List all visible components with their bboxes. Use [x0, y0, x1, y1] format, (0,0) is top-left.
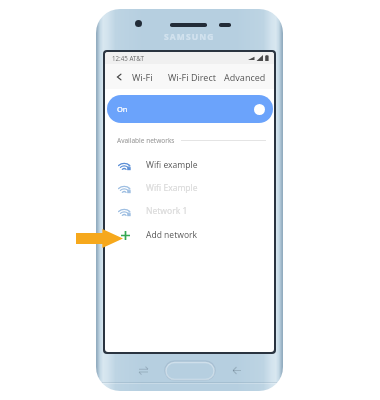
- button[interactable]: Add network: [105, 222, 274, 247]
- other: Pointer to Add network: [76, 229, 123, 248]
- button[interactable]: Back: [227, 361, 245, 379]
- staticText: Advanced: [224, 71, 266, 83]
- staticText: SAMSUNG: [164, 31, 215, 43]
- button[interactable]: On: [107, 95, 273, 123]
- staticText: Wi-Fi: [132, 71, 153, 83]
- button[interactable]: Network 1: [105, 199, 274, 222]
- button[interactable]: Wi-Fi: [130, 66, 155, 88]
- button[interactable]: Wifi Example: [105, 176, 274, 199]
- staticText: Network 1: [146, 205, 188, 217]
- staticText: On: [117, 104, 128, 114]
- button[interactable]: Home: [165, 361, 215, 380]
- staticText: Wifi Example: [146, 182, 198, 194]
- button[interactable]: Wi-Fi Direct: [166, 66, 218, 88]
- button[interactable]: Advanced: [222, 66, 268, 88]
- staticText: Wi-Fi Direct: [168, 71, 216, 83]
- staticText: 12:45 AT&T: [112, 54, 144, 62]
- button[interactable]: Back: [111, 69, 127, 85]
- button[interactable]: Recents: [134, 361, 152, 379]
- staticText: Wifi example: [146, 159, 198, 171]
- button[interactable]: Wifi example: [105, 153, 274, 176]
- staticText: Add network: [146, 229, 198, 241]
- staticText: Available networks: [117, 136, 175, 145]
